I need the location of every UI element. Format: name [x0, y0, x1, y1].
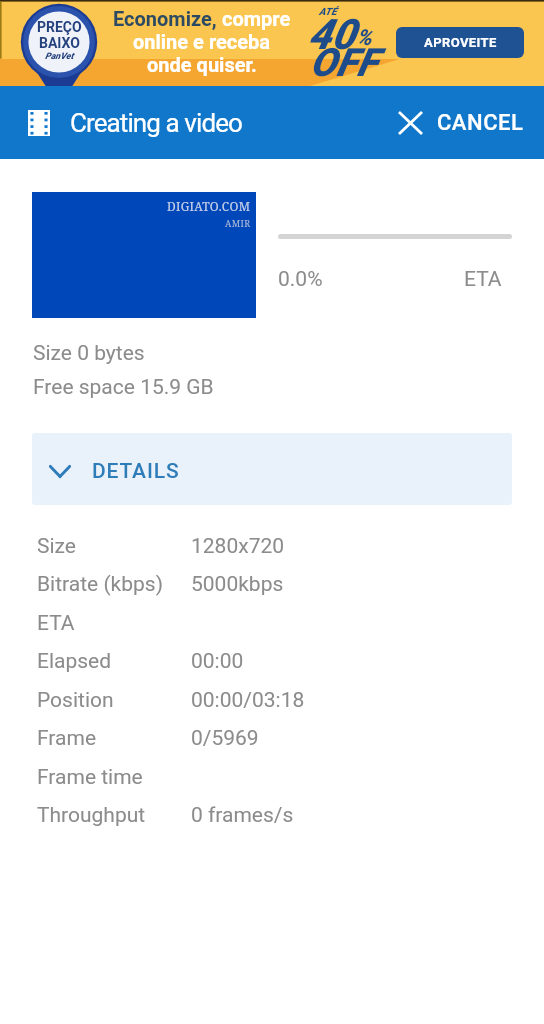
staticText: CANCEL [437, 110, 524, 136]
staticText: Creating a video [70, 108, 243, 138]
staticText: DIGIATO.COM [167, 198, 251, 214]
staticText: APROVEITE [424, 35, 497, 50]
staticText: 00:00/03:18 [191, 688, 305, 713]
staticText: Position [37, 688, 114, 713]
staticText: 0 frames/s [191, 803, 294, 828]
staticText: 00:00 [191, 649, 244, 674]
button[interactable]: ETA [37, 611, 544, 636]
button[interactable]: Bitrate (kbps) [37, 572, 544, 597]
staticText: Economize, [113, 7, 217, 30]
staticText: 40 [308, 10, 356, 59]
button[interactable]: PREÇO [0, 0, 544, 86]
button[interactable]: Frame time [37, 765, 544, 790]
staticText: ATÉ [319, 6, 337, 18]
button[interactable]: DETAILS [32, 433, 512, 505]
staticText: PREÇO [37, 19, 82, 35]
staticText: Throughput [37, 803, 146, 828]
button[interactable]: Elapsed [37, 649, 544, 674]
staticText: PanVet [45, 51, 74, 62]
staticText: Bitrate (kbps) [37, 572, 163, 597]
staticText: ETA [464, 267, 502, 292]
button[interactable]: APROVEITE [396, 27, 524, 58]
button[interactable]: Video [26, 108, 52, 138]
staticText: 0/5969 [191, 726, 259, 751]
staticText: AMIR [225, 217, 251, 229]
button[interactable]: Position [37, 688, 544, 713]
staticText: online e receba [133, 30, 271, 53]
staticText: 5000kbps [191, 572, 284, 597]
staticText: OFF [310, 40, 378, 86]
staticText: Frame time [37, 765, 143, 790]
staticText: Free space 15.9 GB [33, 375, 214, 400]
staticText: 1280x720 [191, 534, 285, 559]
button[interactable]: Throughput [37, 803, 544, 828]
button[interactable]: Size [37, 534, 544, 559]
staticText: Frame [37, 726, 97, 751]
staticText: Elapsed [37, 649, 112, 674]
staticText: Size 0 bytes [33, 341, 145, 366]
staticText: BAIXO [39, 35, 80, 51]
staticText: compre [217, 7, 291, 30]
staticText: ETA [37, 611, 75, 636]
staticText: % [356, 25, 372, 51]
staticText: onde quiser. [147, 53, 257, 76]
staticText: 0.0% [278, 267, 323, 292]
staticText: DETAILS [92, 459, 180, 484]
button[interactable]: CANCEL [400, 110, 544, 136]
button[interactable]: Frame [37, 726, 544, 751]
staticText: Size [37, 534, 76, 559]
